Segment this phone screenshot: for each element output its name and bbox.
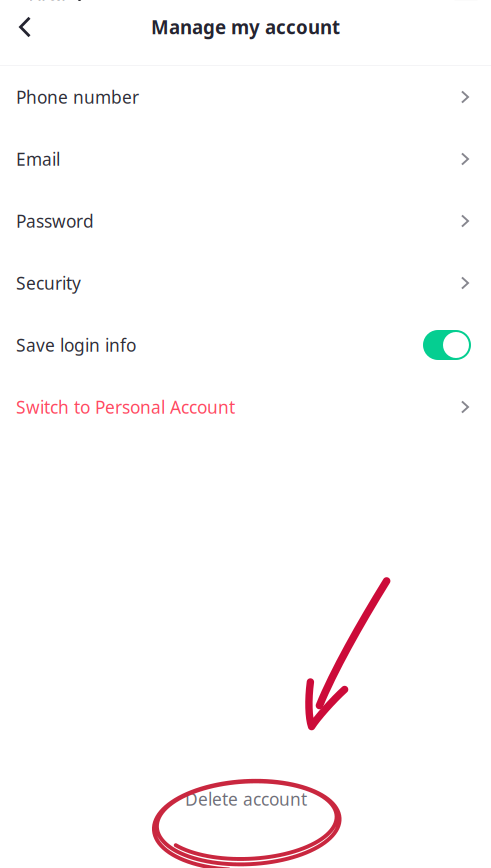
button[interactable]: Phone number [0, 66, 491, 128]
staticText: Email [16, 147, 60, 170]
staticText: Security [16, 271, 81, 294]
button[interactable]: Delete account [176, 784, 316, 814]
staticText: Password [16, 209, 94, 232]
button[interactable]: Security [0, 252, 491, 314]
staticText: Phone number [16, 85, 139, 108]
staticText: Switch to Personal Account [16, 395, 235, 418]
staticText: Delete account [185, 787, 307, 810]
button[interactable]: Save login info [0, 314, 491, 376]
button[interactable]: Switch to Personal Account [0, 376, 491, 438]
staticText: AT&T [30, 0, 68, 5]
button[interactable]: Back [0, 5, 45, 49]
button[interactable]: Email [0, 128, 491, 190]
button[interactable]: Password [0, 190, 491, 252]
staticText: Save login info [16, 333, 136, 356]
staticText: Manage my account [151, 15, 340, 39]
